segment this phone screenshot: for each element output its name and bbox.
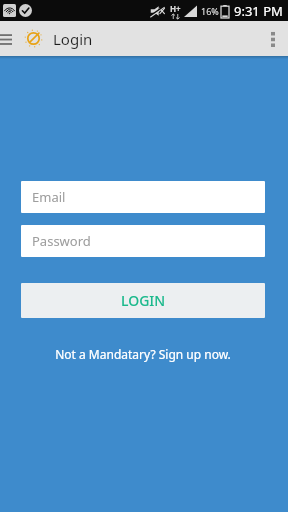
staticText: Password [32,232,91,250]
staticText: Not a Mandatary? Sign up now. [55,346,231,362]
button[interactable]: Password [21,225,265,257]
staticText: Email [32,188,66,206]
staticText: H+ [170,3,181,14]
button[interactable]: Navigation menu [0,21,18,56]
button[interactable]: More options [258,21,288,56]
button[interactable]: Email [21,181,265,213]
button[interactable]: LOGIN [21,283,265,318]
staticText: Login [53,29,93,49]
staticText: 9:31 PM [234,2,283,20]
staticText: 16% [201,5,219,17]
button[interactable]: Not a Mandatary? Sign up now. [21,346,265,362]
staticText: LOGIN [121,291,166,310]
